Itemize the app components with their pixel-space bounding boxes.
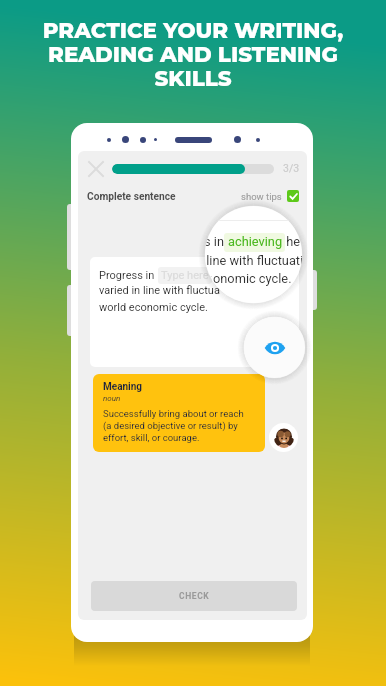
staticText: Meaning <box>103 381 143 393</box>
staticText: Progress in <box>99 269 158 282</box>
button[interactable]: CHECK <box>91 581 297 611</box>
staticText: PRACTICE YOUR WRITING, READING AND LISTE… <box>0 17 386 92</box>
staticText: Type here <box>161 269 209 282</box>
staticText: s in <box>205 234 228 249</box>
button[interactable]: Show answer <box>244 317 305 378</box>
staticText: CHECK <box>179 591 210 601</box>
button[interactable]: show tips <box>241 190 299 202</box>
staticText: onomic cycle. <box>213 271 292 286</box>
staticText: achieving <box>228 234 283 249</box>
button[interactable]: Close <box>85 158 106 179</box>
staticText: Successfully bring about or reach (a des… <box>103 408 244 443</box>
staticText: 3/3 <box>283 162 300 174</box>
staticText: economic cycle. <box>212 269 294 282</box>
staticText: Complete sentence <box>87 191 176 203</box>
staticText: varied in line with fluctua <box>99 284 220 297</box>
staticText: ner <box>205 271 213 286</box>
staticText: world economic cycle. <box>99 301 208 314</box>
staticText: n line with fluctuatio <box>205 253 302 268</box>
staticText: he <box>283 234 301 249</box>
staticText: noun <box>103 394 121 403</box>
staticText: show tips <box>241 191 282 202</box>
